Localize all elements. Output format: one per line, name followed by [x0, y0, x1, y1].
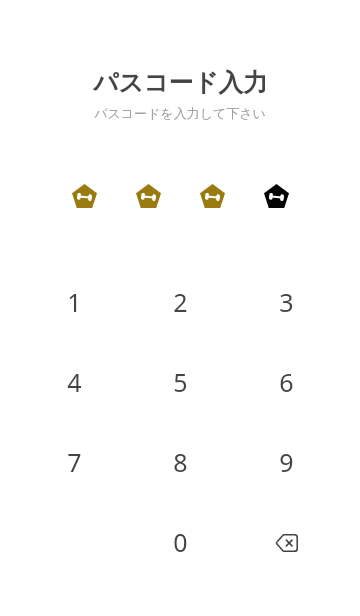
button[interactable]: 8 — [127, 422, 233, 502]
staticText: パスコードを入力して下さい — [94, 105, 266, 121]
staticText: 0 — [173, 525, 188, 559]
button[interactable]: 9 — [233, 422, 339, 502]
button[interactable]: 6 — [233, 342, 339, 422]
staticText: 2 — [173, 285, 188, 319]
button[interactable]: 3 — [233, 262, 339, 342]
staticText: 1 — [67, 285, 82, 319]
other: Digit entered — [72, 184, 97, 208]
button[interactable]: 4 — [21, 342, 127, 422]
other: Digit entered — [200, 184, 225, 208]
staticText: 4 — [67, 365, 82, 399]
staticText: 6 — [279, 365, 294, 399]
button[interactable]: 0 — [127, 502, 233, 582]
staticText: 3 — [279, 285, 294, 319]
button[interactable]: 7 — [21, 422, 127, 502]
staticText: パスコード入力 — [93, 67, 268, 98]
button[interactable]: 5 — [127, 342, 233, 422]
button[interactable]: Backspace — [233, 502, 339, 582]
other: Digit entered — [136, 184, 161, 208]
button[interactable]: 1 — [21, 262, 127, 342]
staticText: 5 — [173, 365, 188, 399]
staticText: 9 — [279, 445, 294, 479]
staticText: 7 — [67, 445, 82, 479]
other: Next digit — [264, 184, 289, 208]
staticText: 8 — [173, 445, 188, 479]
button[interactable]: 2 — [127, 262, 233, 342]
